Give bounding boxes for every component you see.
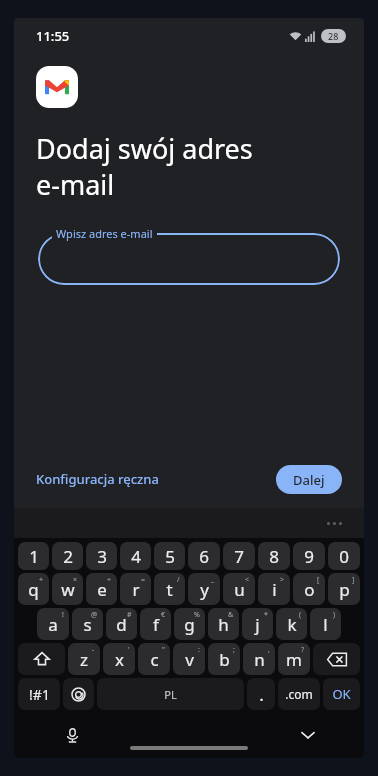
button[interactable]: 7 [223,542,255,570]
staticText: d [116,613,127,636]
staticText: v [185,648,194,671]
button[interactable]: i [258,573,290,605]
button[interactable]: v [173,643,205,675]
button[interactable]: . [247,678,275,710]
staticText: % [194,610,200,620]
staticText: ÷ [107,575,112,585]
staticText: 28 [328,30,339,42]
button[interactable]: Backspace [313,643,360,675]
staticText: ] [352,575,355,585]
button[interactable]: Voice input [58,721,86,749]
button[interactable]: z [68,643,100,675]
staticText: , [268,645,270,655]
button[interactable]: l [310,608,341,640]
button[interactable]: n [243,643,275,675]
button[interactable]: w [52,573,83,605]
staticText: > [280,575,285,585]
staticText: . [259,683,264,706]
staticText: 4 [131,545,141,568]
staticText: * [264,610,268,620]
button[interactable]: o [293,573,325,605]
staticText: - [92,645,95,655]
staticText: q [28,578,39,601]
button[interactable]: e [86,573,117,605]
button[interactable]: u [223,573,255,605]
staticText: € [161,610,166,620]
staticText: !#1 [29,685,50,704]
button[interactable]: Dalej [276,465,342,494]
staticText: & [228,610,234,620]
button[interactable]: 9 [293,542,325,570]
staticText: g [184,613,195,636]
staticText: n [254,648,265,671]
staticText: 9 [304,545,314,568]
staticText: c [150,648,159,671]
button[interactable]: m [278,643,310,675]
staticText: y [200,578,209,601]
button[interactable]: OK [323,678,360,710]
staticText: 6 [199,545,209,568]
staticText: ! [62,610,64,620]
staticText: / [177,575,180,585]
staticText: 1 [29,545,39,568]
button[interactable]: More options [321,516,348,531]
button[interactable]: q [18,573,49,605]
button[interactable]: d [106,608,137,640]
staticText: × [73,575,78,585]
staticText: PL [164,687,177,702]
button[interactable]: y [188,573,220,605]
staticText: h [218,613,229,636]
button[interactable]: 5 [154,542,185,570]
button[interactable]: !#1 [18,678,60,710]
staticText: p [339,578,350,601]
staticText: 8 [269,545,279,568]
staticText: t [166,578,173,601]
staticText: # [127,610,132,620]
button[interactable]: r [120,573,151,605]
staticText: k [287,613,297,636]
button[interactable]: t [154,573,185,605]
staticText: ; [233,645,235,655]
button[interactable]: p [328,573,360,605]
button[interactable] [38,233,340,285]
button[interactable]: PL [97,678,244,710]
button[interactable]: 3 [86,542,117,570]
staticText: 11:55 [36,27,70,45]
staticText: Wpisz adres e-mail [56,226,153,241]
button[interactable]: Hide keyboard [294,721,322,749]
button[interactable]: 4 [120,542,151,570]
button[interactable]: j [242,608,273,640]
button[interactable]: a [37,608,69,640]
staticText: r [132,578,140,601]
button[interactable]: 8 [258,542,290,570]
staticText: + [39,575,44,585]
button[interactable]: x [103,643,135,675]
staticText: Dodaj swój adres e-mail [36,130,253,203]
staticText: _ [211,575,215,585]
staticText: z [80,648,88,671]
button[interactable]: h [208,608,239,640]
button[interactable]: g [174,608,205,640]
button[interactable]: c [138,643,170,675]
button[interactable]: b [208,643,240,675]
button[interactable]: 2 [52,542,83,570]
button[interactable]: 6 [188,542,220,570]
button[interactable]: Konfiguracja ręczna [36,464,159,494]
staticText: 5 [165,545,175,568]
button[interactable]: 0 [328,542,360,570]
button[interactable]: 1 [18,542,49,570]
button[interactable]: f [140,608,171,640]
button[interactable] [63,678,94,710]
button[interactable]: s [72,608,103,640]
staticText: x [115,648,124,671]
button[interactable]: Shift [18,643,65,675]
staticText: Konfiguracja ręczna [36,470,159,488]
button[interactable]: k [276,608,307,640]
staticText: ' [128,645,130,655]
staticText: a [48,613,58,636]
staticText: @ [91,610,98,620]
staticText: w [61,578,75,601]
button[interactable]: .com [278,678,320,710]
staticText: 0 [339,545,349,568]
staticText: e [97,578,107,601]
